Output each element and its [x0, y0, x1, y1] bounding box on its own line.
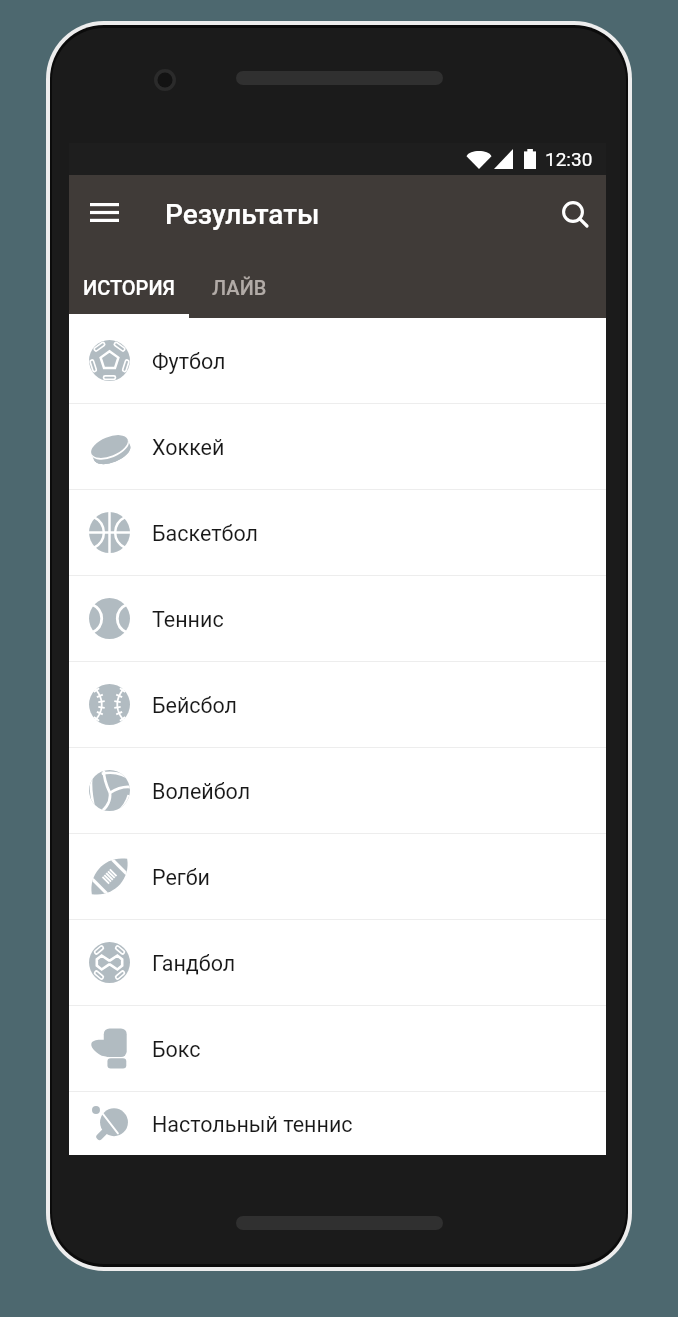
button[interactable]: ЛАЙВ: [184, 253, 294, 318]
staticText: Футбол: [152, 349, 226, 374]
button[interactable]: Гандбол: [69, 920, 606, 1005]
staticText: Регби: [152, 865, 210, 890]
staticText: Бейсбол: [152, 693, 238, 718]
button[interactable]: Настольный теннис: [69, 1092, 606, 1155]
staticText: Хоккей: [152, 435, 225, 460]
staticText: Гандбол: [152, 951, 236, 976]
staticText: Настольный теннис: [152, 1112, 353, 1137]
staticText: ИСТОРИЯ: [83, 276, 175, 299]
button[interactable]: Волейбол: [69, 748, 606, 833]
staticText: Теннис: [152, 607, 224, 632]
button[interactable]: Search: [547, 186, 603, 242]
button[interactable]: Menu: [76, 186, 132, 242]
staticText: Баскетбол: [152, 521, 258, 546]
button[interactable]: Хоккей: [69, 404, 606, 489]
button[interactable]: Регби: [69, 834, 606, 919]
staticText: Результаты: [165, 198, 320, 231]
button[interactable]: Бокс: [69, 1006, 606, 1091]
button[interactable]: Теннис: [69, 576, 606, 661]
button[interactable]: Баскетбол: [69, 490, 606, 575]
button[interactable]: ИСТОРИЯ: [69, 253, 189, 318]
staticText: 12:30: [545, 148, 593, 170]
staticText: ЛАЙВ: [212, 276, 267, 299]
staticText: Волейбол: [152, 779, 251, 804]
button[interactable]: Футбол: [69, 318, 606, 403]
button[interactable]: Бейсбол: [69, 662, 606, 747]
staticText: Бокс: [152, 1037, 201, 1062]
